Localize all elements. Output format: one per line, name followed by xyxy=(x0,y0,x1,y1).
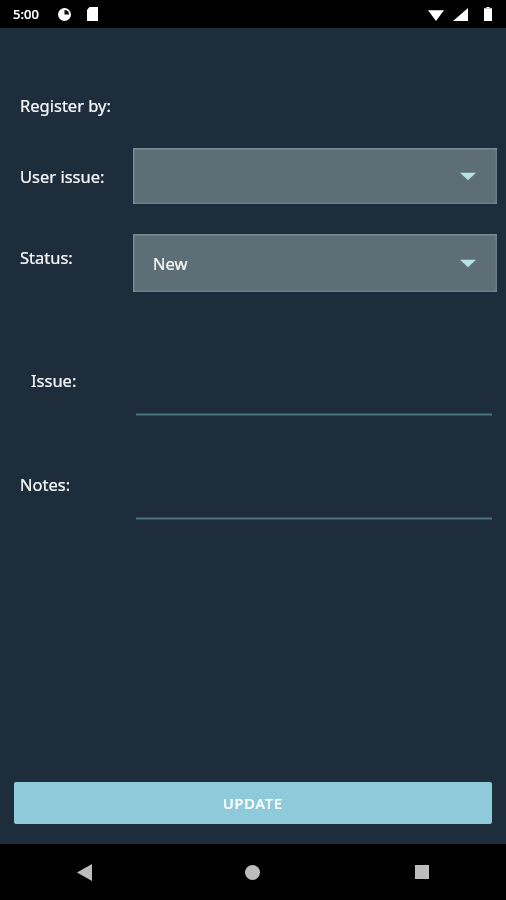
staticText: New xyxy=(153,252,188,274)
staticText: Status: xyxy=(20,246,73,268)
button[interactable]: User issue dropdown xyxy=(133,148,497,204)
staticText: Issue: xyxy=(31,369,77,391)
button[interactable]: Home xyxy=(168,844,337,900)
staticText: Notes: xyxy=(20,473,71,495)
button[interactable]: Recent apps xyxy=(337,844,506,900)
button[interactable]: Text input field xyxy=(136,392,492,416)
button[interactable]: UPDATE xyxy=(14,782,492,824)
staticText: 5:00 xyxy=(13,5,39,23)
button[interactable]: Status dropdown xyxy=(133,234,497,292)
staticText: UPDATE xyxy=(223,793,283,813)
staticText: User issue: xyxy=(20,165,105,187)
button[interactable]: Text input field xyxy=(136,496,492,520)
button[interactable]: Back xyxy=(0,844,168,900)
staticText: Register by: xyxy=(20,94,111,116)
